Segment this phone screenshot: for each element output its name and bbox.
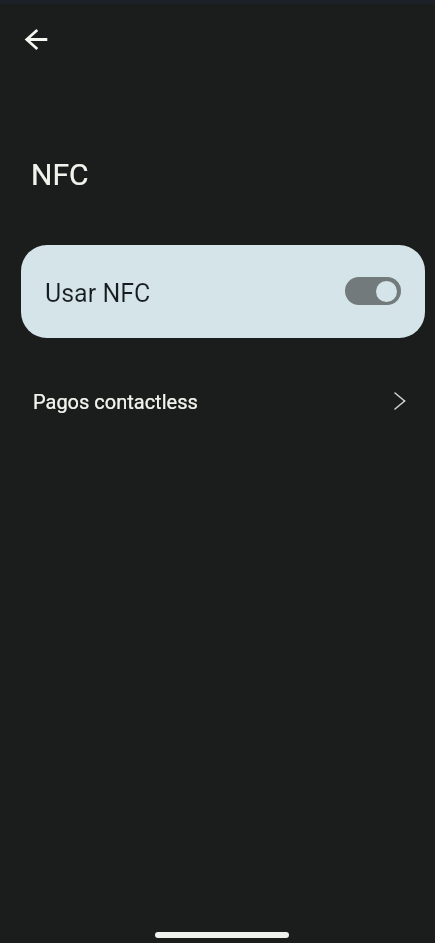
- button[interactable]: Usar NFC: [21, 245, 425, 338]
- button[interactable]: Back: [13, 15, 61, 63]
- button[interactable]: Pagos contactless: [0, 373, 435, 429]
- staticText: Usar NFC: [45, 279, 151, 308]
- staticText: NFC: [31, 157, 89, 192]
- staticText: Pagos contactless: [33, 390, 198, 413]
